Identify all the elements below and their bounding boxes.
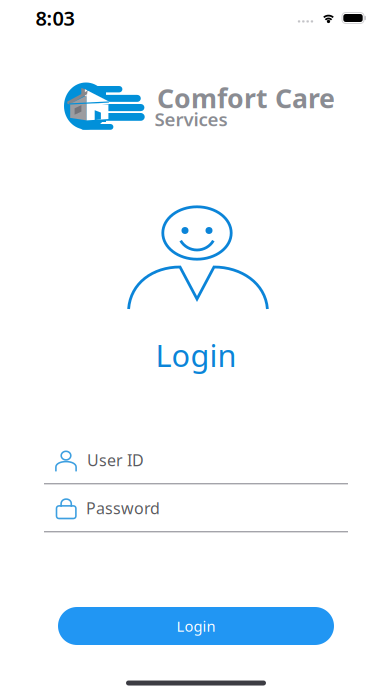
button[interactable]: Password xyxy=(44,487,348,533)
staticText: User ID xyxy=(87,449,144,471)
staticText: Login xyxy=(176,616,215,636)
staticText: Services xyxy=(154,107,227,131)
staticText: Login xyxy=(155,335,236,375)
button[interactable]: Login xyxy=(58,607,334,645)
button[interactable]: User ID xyxy=(44,439,348,485)
staticText: 8:03 xyxy=(35,5,74,31)
staticText: Password xyxy=(86,497,160,519)
staticText: Comfort Care xyxy=(157,80,335,116)
